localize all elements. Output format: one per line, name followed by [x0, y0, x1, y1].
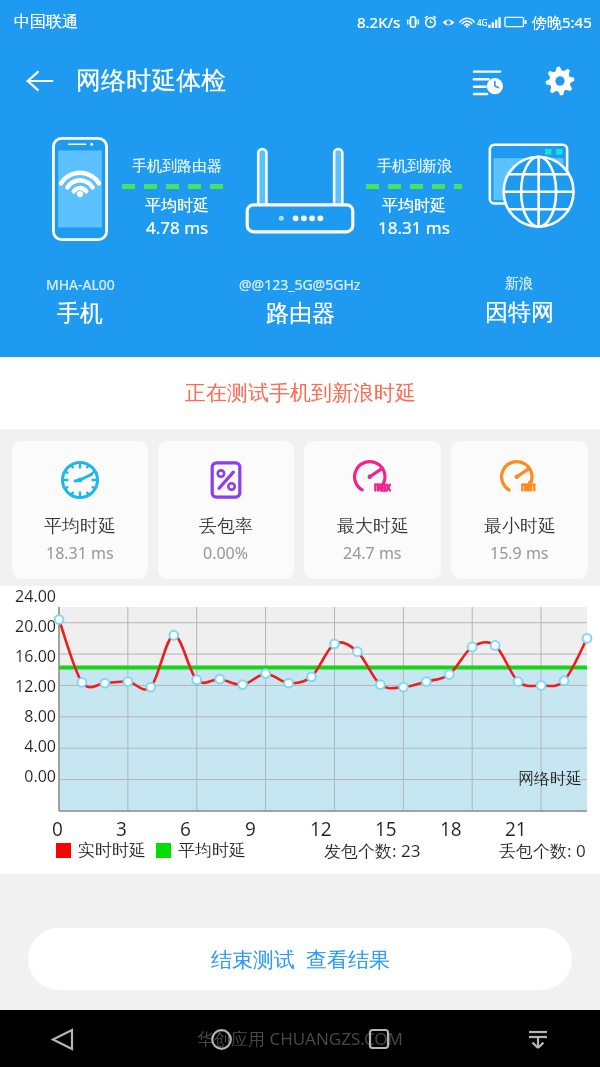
staticText: @@123_5G@5GHz: [239, 275, 361, 294]
staticText: 平均时延: [178, 840, 246, 861]
staticText: 24.00: [4, 585, 56, 607]
staticText: 手机: [57, 299, 103, 328]
button[interactable]: Home: [199, 1017, 243, 1061]
staticText: 最小时延: [484, 515, 556, 538]
staticText: 网络时延体检: [76, 65, 226, 96]
button[interactable]: 丢包率: [158, 441, 294, 579]
staticText: 21: [505, 816, 527, 842]
staticText: 最大时延: [337, 515, 409, 538]
staticText: 18: [440, 816, 462, 842]
button[interactable]: Recents: [357, 1017, 401, 1061]
button[interactable]: 平均时延: [12, 441, 148, 579]
staticText: 平均时延: [145, 196, 209, 216]
staticText: 发包个数: 23: [324, 839, 421, 862]
staticText: 4.00: [4, 735, 56, 757]
staticText: 路由器: [266, 299, 335, 328]
button[interactable]: Back: [40, 1017, 84, 1061]
staticText: 8.00: [4, 705, 56, 727]
staticText: 16.00: [4, 645, 56, 667]
staticText: 15.9 ms: [490, 542, 549, 564]
staticText: 结束测试 查看结果: [211, 945, 390, 974]
staticText: 0.00%: [203, 542, 249, 564]
staticText: 正在测试手机到新浪时延: [185, 380, 416, 406]
staticText: 平均时延: [382, 196, 446, 216]
button[interactable]: 最小时延: [451, 441, 588, 579]
button[interactable]: Hide navigation bar: [516, 1017, 560, 1061]
staticText: MHA-AL00: [46, 275, 115, 294]
button[interactable]: Settings: [536, 57, 584, 105]
staticText: 新浪: [505, 275, 533, 293]
staticText: 8.2K/s: [357, 12, 401, 32]
button[interactable]: 结束测试 查看结果: [28, 928, 572, 990]
staticText: 18.31 ms: [378, 216, 450, 239]
staticText: 因特网: [485, 298, 554, 327]
button[interactable]: 最大时延: [304, 441, 441, 579]
staticText: 24.7 ms: [343, 542, 402, 564]
staticText: 手机到路由器: [132, 157, 222, 176]
staticText: 丢包个数: 0: [499, 839, 586, 862]
staticText: 18.31 ms: [46, 542, 114, 564]
staticText: 丢包率: [199, 515, 253, 538]
button[interactable]: Back: [16, 57, 64, 105]
staticText: 中国联通: [14, 12, 78, 32]
staticText: 0: [52, 816, 63, 842]
staticText: 15: [375, 816, 397, 842]
button[interactable]: History: [464, 57, 512, 105]
staticText: 12: [310, 816, 332, 842]
staticText: 4.78 ms: [146, 216, 209, 239]
staticText: 12.00: [4, 675, 56, 697]
staticText: 0.00: [4, 765, 56, 787]
staticText: 3: [116, 816, 127, 842]
staticText: 4G: [477, 17, 488, 28]
staticText: 平均时延: [44, 515, 116, 538]
staticText: 20.00: [4, 615, 56, 637]
staticText: 傍晚5:45: [532, 12, 592, 32]
staticText: 华创应用 CHUANGZS.COM: [197, 1027, 404, 1050]
staticText: 6: [180, 816, 191, 842]
staticText: 手机到新浪: [377, 157, 452, 176]
staticText: 实时时延: [78, 840, 146, 861]
staticText: 9: [245, 816, 256, 842]
staticText: 网络时延: [518, 769, 582, 789]
